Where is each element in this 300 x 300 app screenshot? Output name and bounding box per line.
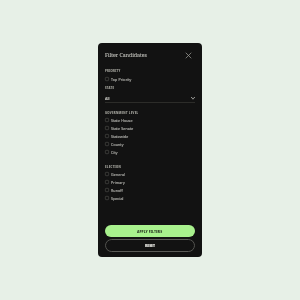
button[interactable]: Runoff: [105, 186, 195, 194]
button[interactable]: State House: [105, 116, 195, 124]
staticText: STATE: [105, 86, 115, 90]
button[interactable]: APPLY FILTERS: [105, 225, 195, 237]
staticText: County: [111, 142, 124, 147]
button[interactable]: Close: [185, 52, 192, 59]
button[interactable]: General: [105, 170, 195, 178]
staticText: PRIORITY: [105, 69, 121, 73]
button[interactable]: Top Priority: [105, 75, 195, 83]
button[interactable]: County: [105, 140, 195, 148]
staticText: State Senate: [111, 126, 134, 131]
staticText: State House: [111, 118, 133, 123]
staticText: Primary: [111, 180, 125, 185]
staticText: Filter Candidates: [105, 51, 188, 58]
staticText: City: [111, 150, 118, 155]
button[interactable]: RESET: [105, 239, 195, 252]
staticText: Statewide: [111, 134, 129, 139]
button[interactable]: All: [105, 94, 195, 102]
staticText: RESET: [145, 243, 155, 248]
staticText: ELECTION: [105, 165, 122, 169]
button[interactable]: Primary: [105, 178, 195, 186]
button[interactable]: State Senate: [105, 124, 195, 132]
staticText: Special: [111, 196, 124, 201]
staticText: Top Priority: [111, 77, 132, 82]
button[interactable]: City: [105, 148, 195, 156]
button[interactable]: Statewide: [105, 132, 195, 140]
staticText: APPLY FILTERS: [137, 229, 163, 234]
button[interactable]: Special: [105, 194, 195, 202]
staticText: General: [111, 172, 125, 177]
staticText: All: [105, 96, 191, 101]
staticText: Runoff: [111, 188, 123, 193]
staticText: GOVERNMENT LEVEL: [105, 111, 139, 115]
